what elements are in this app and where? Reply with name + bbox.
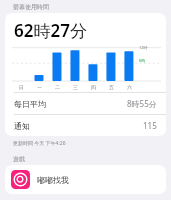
staticText: 四: [91, 84, 96, 90]
staticText: 螢幕使用時間: [13, 3, 49, 11]
staticText: 115: [143, 120, 157, 131]
staticText: 五: [109, 84, 114, 90]
other: 嘟嘟找我 app icon: [11, 170, 30, 189]
button[interactable]: 通知: [5, 115, 166, 136]
staticText: 更新時間 今天 下午4:26: [13, 140, 66, 147]
button[interactable]: 嘟嘟找我 app icon: [5, 165, 166, 194]
staticText: 一: [37, 84, 42, 90]
staticText: 通知: [14, 121, 30, 131]
staticText: 6時: [139, 58, 146, 63]
staticText: 六: [127, 84, 132, 90]
staticText: 遊戲: [13, 155, 25, 163]
staticText: 62時27分: [14, 19, 87, 42]
button[interactable]: 每日平均: [5, 93, 166, 114]
staticText: 每日平均: [14, 99, 46, 109]
staticText: 二: [55, 84, 60, 90]
staticText: 三: [73, 84, 78, 90]
button[interactable]: 62時27分: [5, 13, 166, 136]
staticText: 12時: [139, 45, 148, 50]
staticText: 嘟嘟找我: [37, 175, 69, 185]
staticText: 8時55分: [127, 98, 157, 109]
staticText: 日: [19, 84, 24, 90]
